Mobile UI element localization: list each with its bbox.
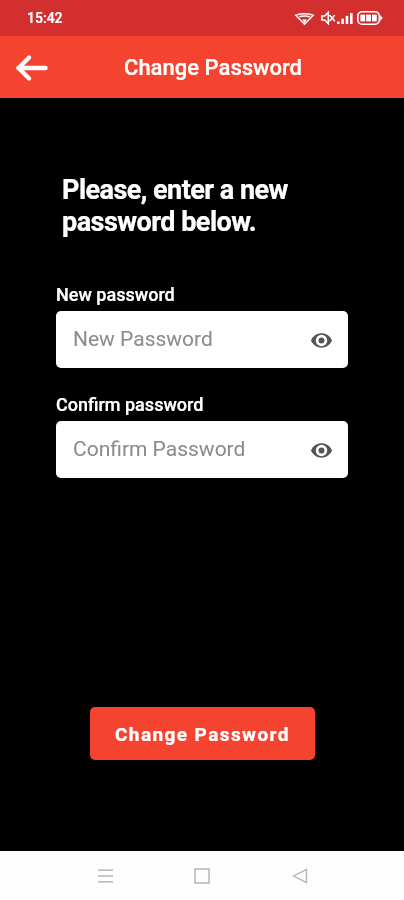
staticText: New password (56, 284, 175, 305)
staticText: Confirm password (56, 394, 204, 415)
staticText: 15:42 (27, 10, 63, 26)
staticText: Change Password (115, 723, 290, 745)
button[interactable]: Back (252, 851, 348, 900)
staticText: Confirm Password (73, 437, 246, 462)
staticText: New Password (73, 327, 213, 352)
button[interactable]: Toggle password visibility (309, 328, 333, 352)
staticText: Please, enter a new password below. (62, 174, 288, 237)
button[interactable]: Home (154, 851, 250, 900)
button[interactable]: Toggle password visibility (309, 438, 333, 462)
button[interactable]: Back (9, 45, 55, 91)
button[interactable]: Change Password (90, 707, 315, 760)
button[interactable]: Confirm Password (56, 421, 348, 478)
staticText: Change Password (124, 55, 302, 81)
button[interactable]: Recent apps (57, 851, 153, 900)
button[interactable]: New Password (56, 311, 348, 368)
